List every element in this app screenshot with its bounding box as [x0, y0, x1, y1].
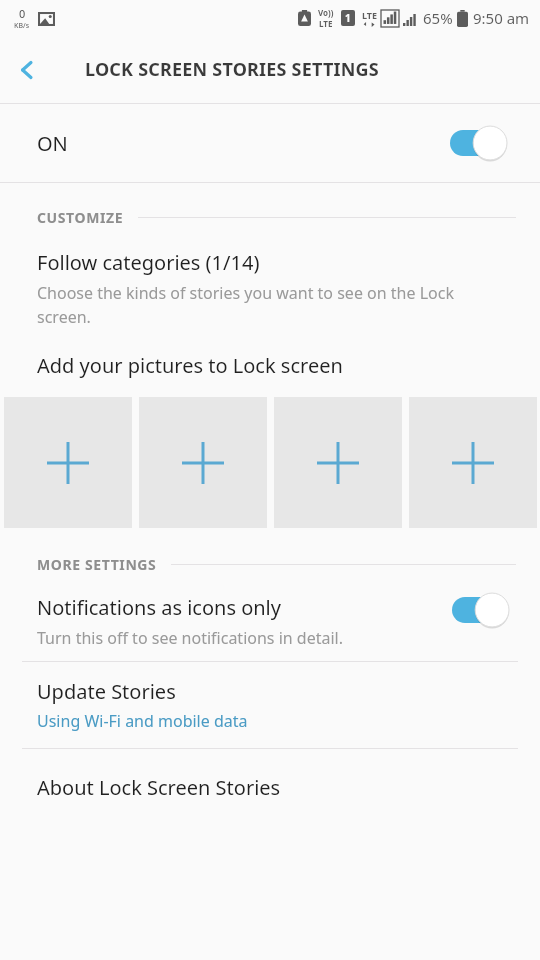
staticText: Add your pictures to Lock screen: [37, 352, 343, 379]
button[interactable]: Add picture: [139, 397, 267, 528]
button[interactable]: ON: [0, 104, 540, 182]
staticText: Vo)): [318, 7, 334, 18]
staticText: 9:50 am: [473, 8, 530, 28]
button[interactable]: About Lock Screen Stories: [0, 749, 540, 825]
staticText: CUSTOMIZE: [37, 208, 124, 227]
button[interactable]: Notifications as icons only: [0, 582, 540, 661]
staticText: KB/s: [14, 21, 30, 31]
staticText: Notifications as icons only: [37, 594, 281, 621]
staticText: LTE: [362, 9, 378, 21]
staticText: LOCK SCREEN STORIES SETTINGS: [85, 57, 379, 82]
staticText: About Lock Screen Stories: [37, 774, 281, 801]
button[interactable]: Follow categories (1/14): [0, 235, 540, 338]
staticText: LTE: [319, 18, 333, 29]
staticText: ON: [37, 130, 68, 157]
staticText: Update Stories: [37, 678, 176, 705]
staticText: 65%: [423, 8, 453, 28]
staticText: 1: [345, 11, 351, 25]
staticText: Follow categories (1/14): [37, 249, 260, 276]
button[interactable]: Add picture: [274, 397, 402, 528]
staticText: 0: [19, 6, 26, 21]
button[interactable]: Update Stories: [0, 662, 540, 748]
staticText: MORE SETTINGS: [37, 555, 157, 574]
button[interactable]: Back: [0, 43, 54, 97]
staticText: Choose the kinds of stories you want to …: [37, 282, 510, 328]
button[interactable]: Add picture: [409, 397, 537, 528]
staticText: Turn this off to see notifications in de…: [37, 627, 343, 649]
staticText: Using Wi-Fi and mobile data: [37, 710, 248, 732]
button[interactable]: Add picture: [4, 397, 132, 528]
